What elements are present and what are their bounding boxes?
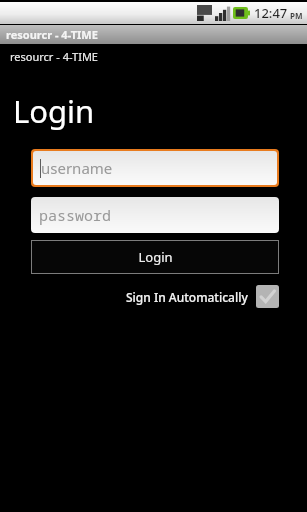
staticText: 12:47	[254, 4, 288, 22]
staticText: resourcr - 4-TIME	[10, 49, 98, 64]
staticText: username	[41, 158, 113, 178]
staticText: PM	[290, 10, 303, 21]
other: Sign In Automatically checkbox	[256, 285, 279, 308]
button[interactable]: Login	[31, 240, 279, 274]
staticText: password	[39, 205, 112, 225]
staticText: Login	[13, 90, 95, 132]
staticText: Login	[138, 248, 173, 266]
staticText: Sign In Automatically	[126, 289, 248, 305]
button[interactable]: Sign In Automatically	[126, 285, 279, 308]
button[interactable]: password	[31, 197, 279, 233]
staticText: resourcr - 4-TIME	[6, 27, 98, 42]
button[interactable]: username	[31, 149, 279, 187]
